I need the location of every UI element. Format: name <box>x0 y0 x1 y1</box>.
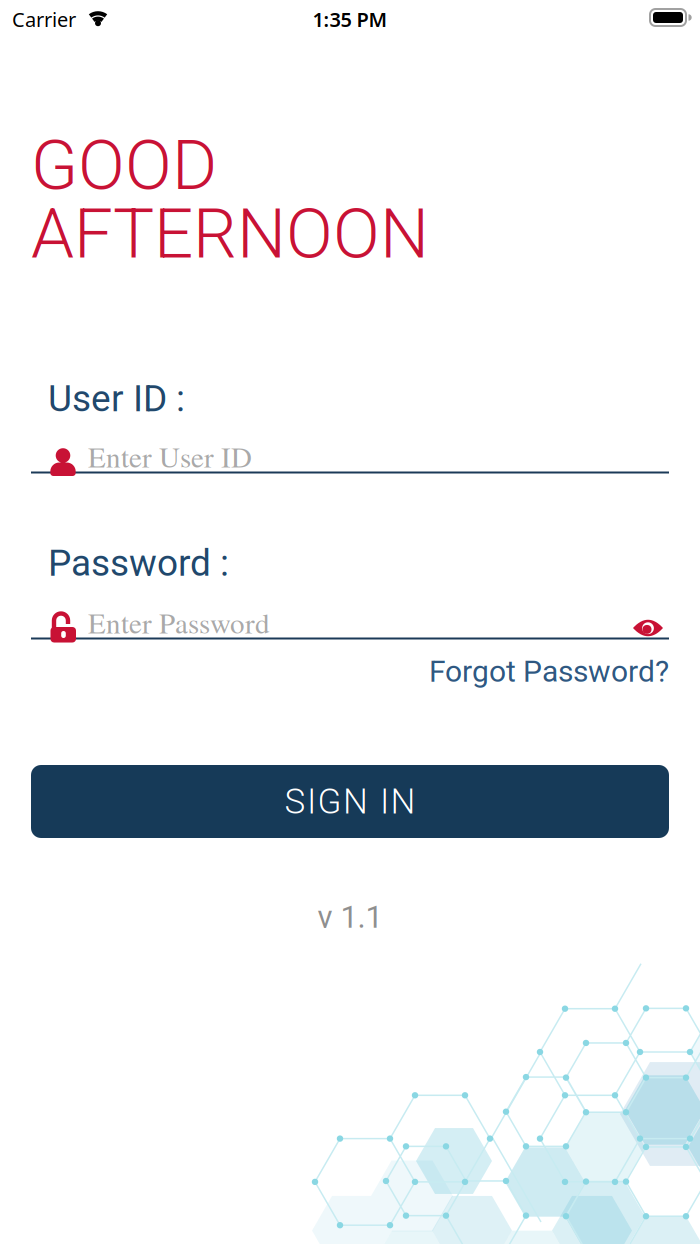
staticText: Enter User ID <box>88 437 252 476</box>
button[interactable]: Show Password <box>618 608 674 644</box>
staticText: User ID : <box>48 377 185 420</box>
staticText: v 1.1 <box>317 899 382 935</box>
staticText: AFTERNOON <box>31 193 429 274</box>
staticText: GOOD <box>31 125 217 206</box>
staticText: Password : <box>48 541 229 585</box>
staticText: Carrier <box>12 6 76 33</box>
staticText: Enter Password <box>88 603 270 642</box>
staticText: 1:35 PM <box>312 6 387 33</box>
button[interactable]: Enter User ID <box>30 434 670 476</box>
button[interactable]: Enter Password <box>30 601 670 643</box>
staticText: SIGN IN <box>284 781 415 822</box>
button[interactable]: SIGN IN <box>31 765 669 838</box>
staticText: Forgot Password? <box>429 654 669 689</box>
button[interactable]: Forgot Password? <box>429 654 669 689</box>
